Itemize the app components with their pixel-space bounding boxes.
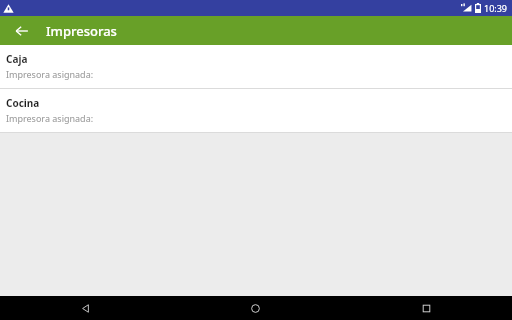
staticText: Impresora asignada: (6, 68, 94, 80)
button[interactable]: Recents (341, 296, 512, 320)
button[interactable]: Cocina (0, 89, 512, 132)
staticText: Cocina (6, 96, 40, 110)
button[interactable]: Caja (0, 45, 512, 88)
button[interactable]: Home (170, 296, 341, 320)
staticText: Caja (6, 52, 28, 66)
staticText: 10:39 (484, 2, 508, 14)
staticText: Impresoras (46, 22, 117, 40)
button[interactable]: Back (10, 19, 34, 43)
staticText: Impresora asignada: (6, 112, 94, 124)
button[interactable]: Back (0, 296, 170, 320)
